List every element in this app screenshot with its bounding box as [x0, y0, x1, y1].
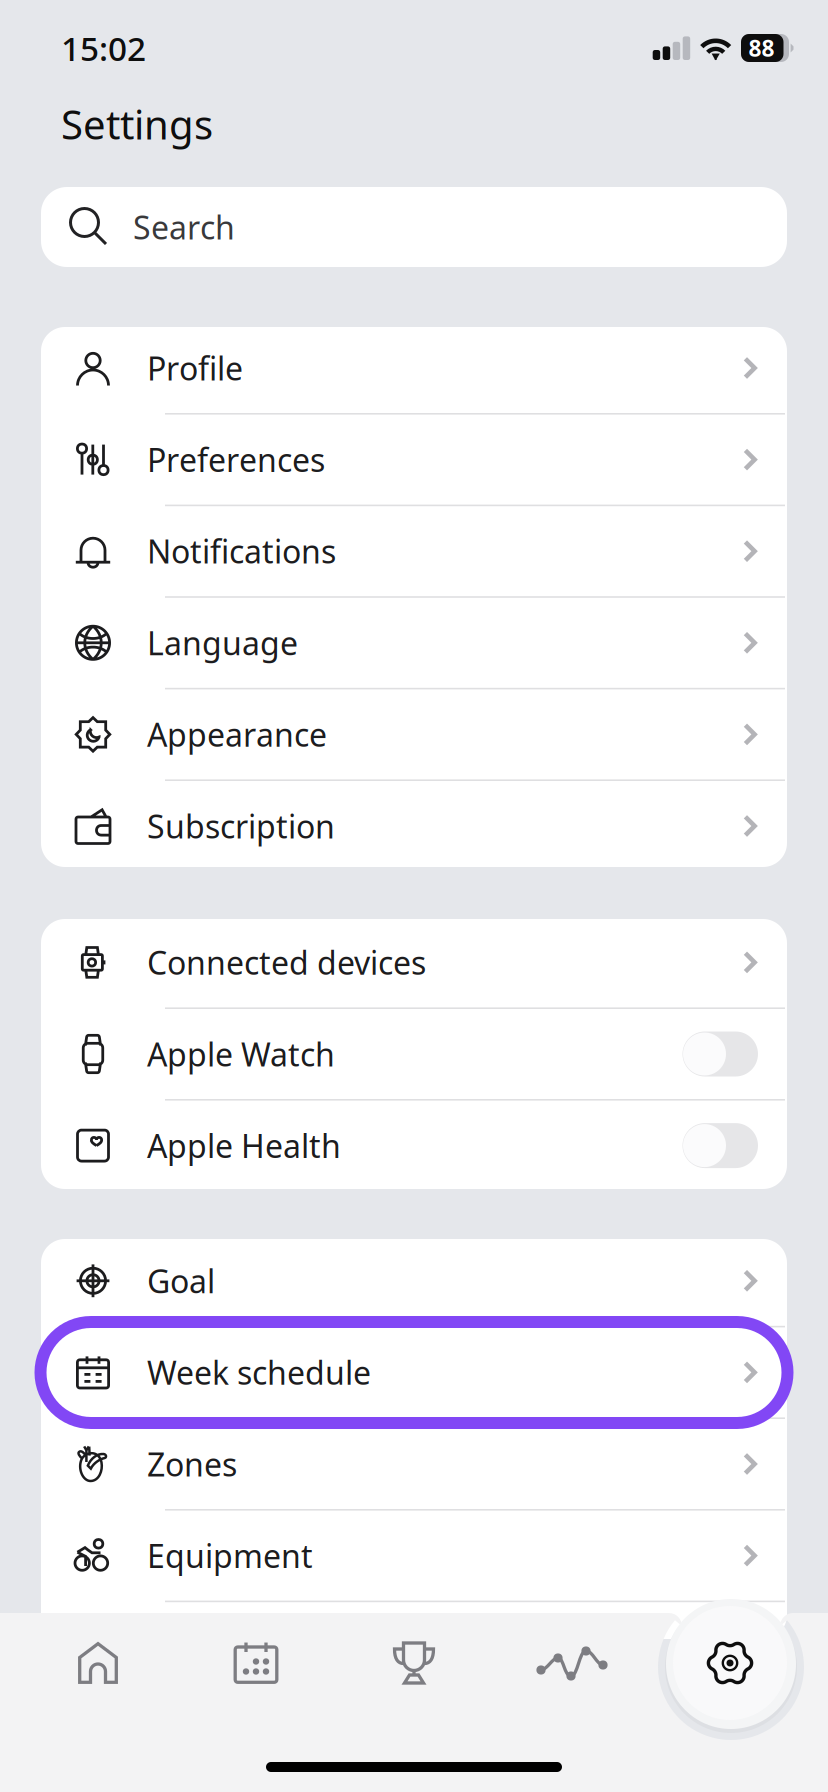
- button[interactable]: Apple Health: [41, 1101, 787, 1191]
- button[interactable]: Preferences: [41, 415, 787, 505]
- staticText: Subscription: [147, 805, 335, 847]
- staticText: Profile: [147, 347, 243, 389]
- button[interactable]: Goal: [41, 1236, 787, 1326]
- button[interactable]: Settings: [651, 1611, 809, 1715]
- button[interactable]: Schedule: [177, 1611, 335, 1715]
- staticText: Settings: [61, 97, 213, 150]
- staticText: Language: [147, 622, 298, 664]
- staticText: Notifications: [147, 530, 336, 572]
- button[interactable]: Apple Watch: [41, 1009, 787, 1099]
- button[interactable]: Search: [41, 187, 787, 267]
- button[interactable]: Appearance: [41, 689, 787, 779]
- staticText: 88: [748, 33, 774, 63]
- staticText: Apple Watch: [147, 1033, 335, 1075]
- staticText: 15:02: [61, 26, 146, 70]
- button[interactable]: Statistics: [493, 1611, 651, 1715]
- staticText: Equipment: [147, 1534, 313, 1577]
- staticText: Apple Health: [147, 1124, 341, 1167]
- staticText: Preferences: [147, 438, 325, 481]
- staticText: Zones: [147, 1443, 237, 1485]
- staticText: Search: [133, 206, 235, 248]
- button[interactable]: Home: [19, 1611, 177, 1715]
- button[interactable]: Awards: [335, 1611, 493, 1715]
- button[interactable]: Profile: [41, 323, 787, 413]
- button[interactable]: Subscription: [41, 781, 787, 871]
- button[interactable]: Connected devices: [41, 917, 787, 1007]
- staticText: Week schedule: [147, 1351, 371, 1394]
- button[interactable]: Zones: [41, 1419, 787, 1509]
- staticText: Connected devices: [147, 941, 426, 984]
- staticText: Goal: [147, 1260, 215, 1302]
- staticText: Appearance: [147, 713, 327, 756]
- button[interactable]: Notifications: [41, 506, 787, 596]
- button[interactable]: Equipment: [41, 1511, 787, 1601]
- button[interactable]: Week schedule: [41, 1327, 787, 1417]
- button[interactable]: Language: [41, 598, 787, 688]
